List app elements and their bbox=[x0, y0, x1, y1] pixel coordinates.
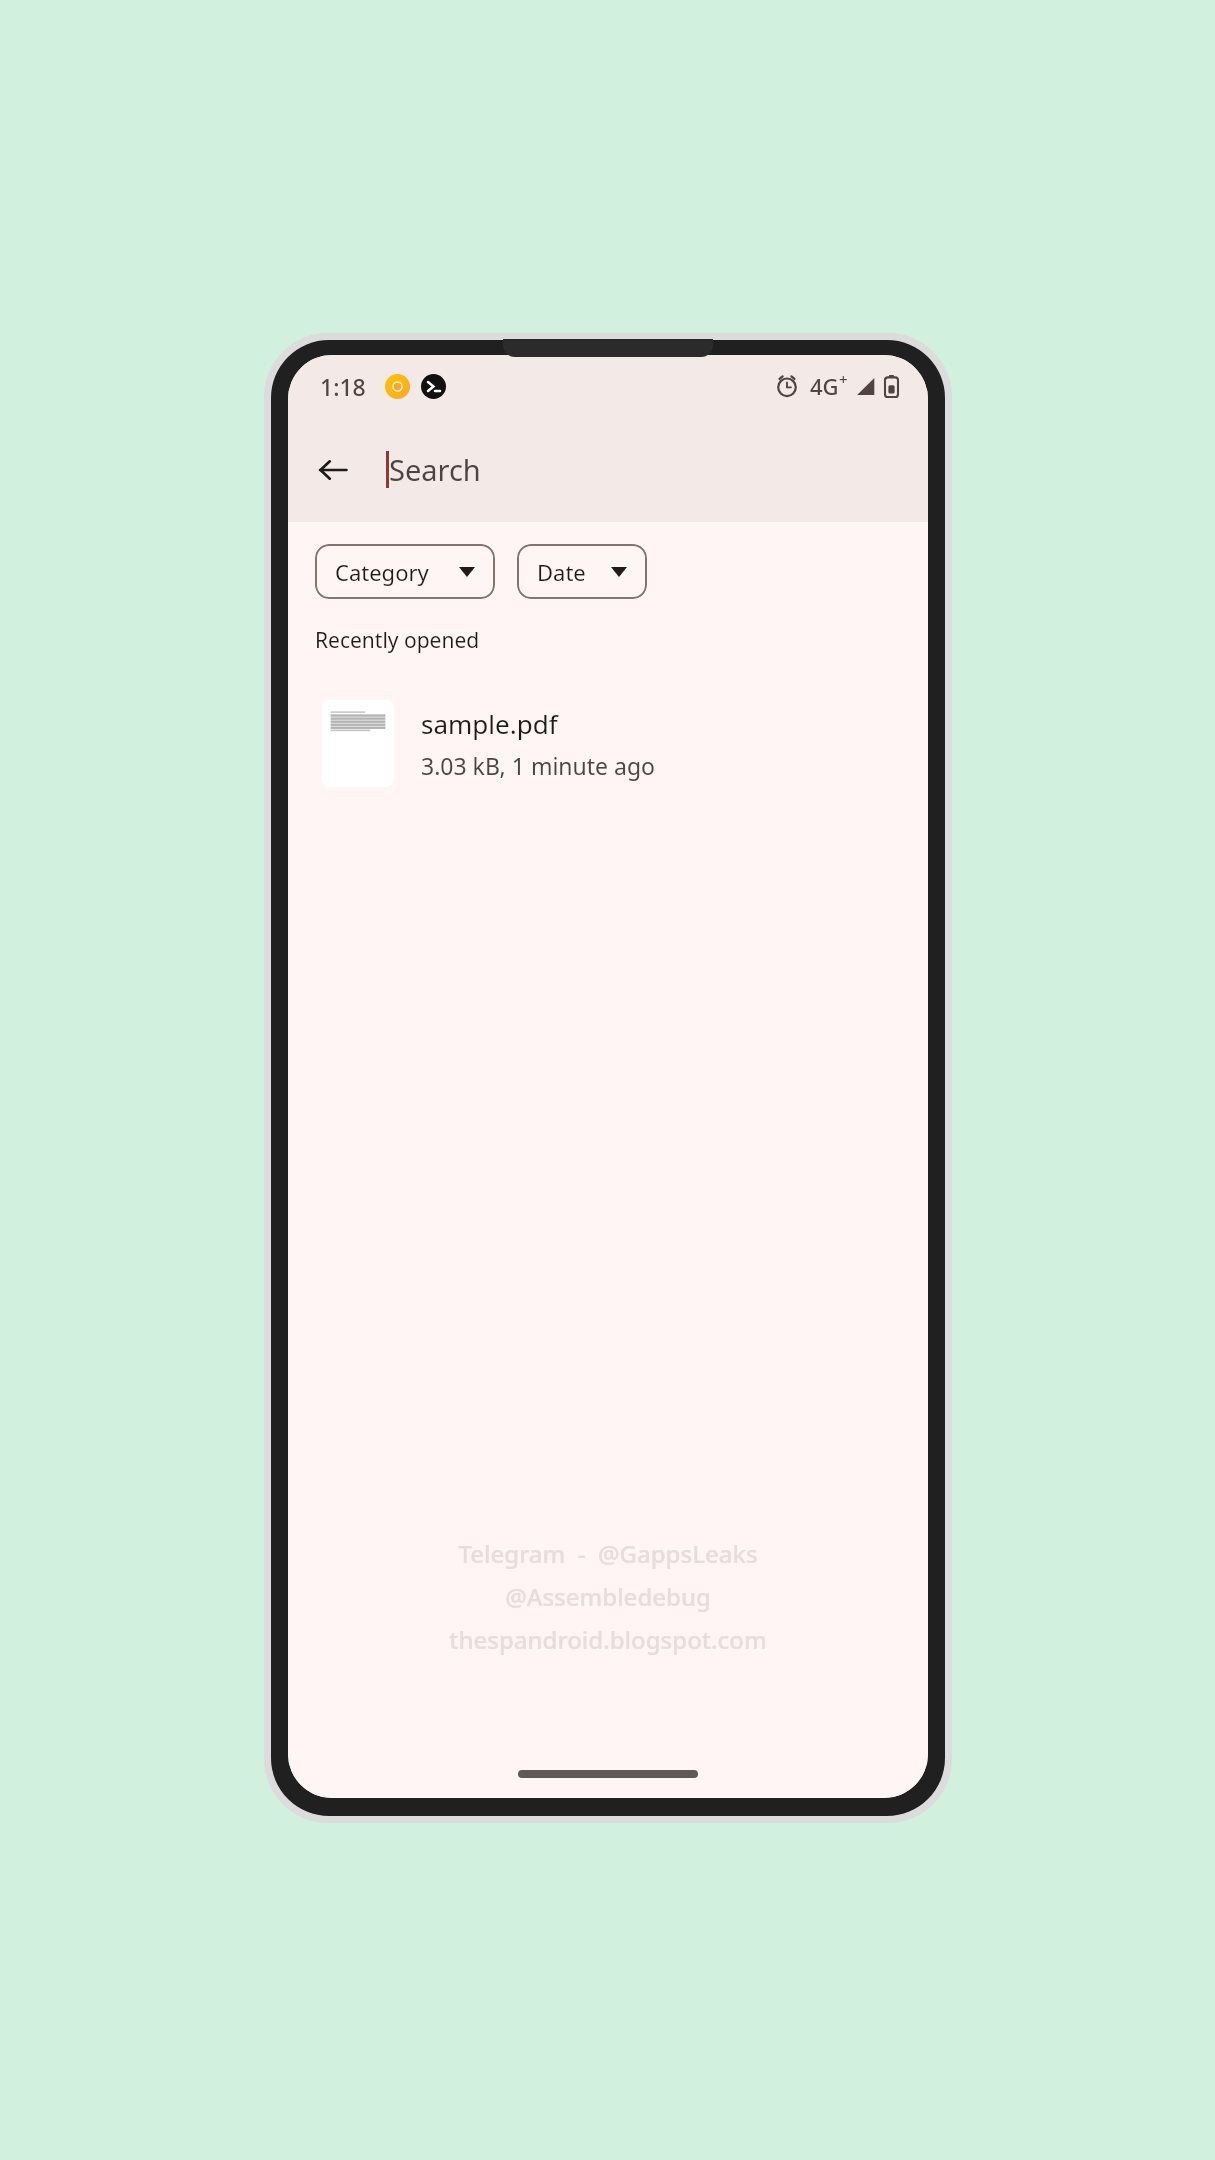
staticText: 3.03 kB, 1 minute ago bbox=[421, 750, 655, 781]
staticText: sample.pdf bbox=[421, 706, 558, 741]
staticText: Search bbox=[389, 450, 481, 489]
staticText: Date bbox=[537, 557, 586, 587]
staticText: 4G bbox=[810, 371, 839, 401]
button[interactable]: sample.pdf bbox=[288, 683, 928, 803]
button[interactable]: Category bbox=[315, 544, 495, 599]
staticText: thespandroid.blogspot.com bbox=[449, 1623, 767, 1656]
staticText: @Assembledebug bbox=[505, 1580, 711, 1613]
staticText: Recently opened bbox=[315, 626, 480, 655]
button[interactable]: Date bbox=[517, 544, 647, 599]
staticText: Telegram - @GappsLeaks bbox=[458, 1537, 758, 1570]
staticText: Category bbox=[335, 557, 429, 587]
staticText: 1:18 bbox=[320, 371, 366, 402]
button[interactable]: Back bbox=[302, 439, 364, 501]
staticText: + bbox=[839, 369, 848, 389]
